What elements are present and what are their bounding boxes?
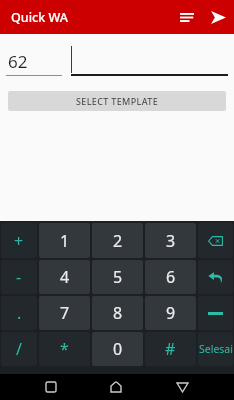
- staticText: 1: [60, 230, 70, 252]
- button[interactable]: .: [1, 296, 37, 330]
- staticText: 9: [166, 302, 176, 324]
- button[interactable]: 8: [92, 296, 143, 330]
- button[interactable]: Done: [198, 332, 233, 366]
- button[interactable]: 0: [92, 332, 143, 366]
- button[interactable]: 7: [39, 296, 90, 330]
- button[interactable]: 5: [92, 260, 143, 294]
- staticText: 7: [60, 302, 70, 324]
- staticText: #: [165, 338, 176, 360]
- staticText: Selesai: [199, 342, 233, 356]
- button[interactable]: 6: [145, 260, 196, 294]
- button[interactable]: /: [1, 332, 37, 366]
- button[interactable]: 9: [145, 296, 196, 330]
- staticText: *: [60, 338, 69, 360]
- staticText: 62: [8, 50, 28, 73]
- button[interactable]: 4: [39, 260, 90, 294]
- button[interactable]: -: [1, 260, 37, 294]
- staticText: -: [16, 266, 22, 288]
- staticText: 6: [166, 266, 176, 288]
- staticText: 0: [113, 338, 123, 360]
- staticText: 5: [113, 266, 123, 288]
- staticText: 3: [166, 230, 176, 252]
- staticText: /: [16, 338, 22, 360]
- staticText: 4: [60, 266, 70, 288]
- button[interactable]: Sort: [173, 3, 201, 31]
- button[interactable]: 3: [145, 223, 196, 258]
- button[interactable]: 1: [39, 223, 90, 258]
- button[interactable]: Send: [204, 3, 232, 31]
- staticText: +: [14, 230, 24, 252]
- staticText: 2: [113, 230, 123, 252]
- button[interactable]: Recents: [37, 374, 65, 400]
- button[interactable]: 2: [92, 223, 143, 258]
- button[interactable]: *: [39, 332, 90, 366]
- button[interactable]: Home: [102, 374, 130, 400]
- button[interactable]: Enter: [198, 260, 233, 294]
- button[interactable]: #: [145, 332, 196, 366]
- staticText: Quick WA: [11, 9, 68, 26]
- button[interactable]: +: [1, 223, 37, 258]
- button[interactable]: Backspace: [198, 223, 233, 258]
- button[interactable]: SELECT TEMPLATE: [8, 91, 226, 111]
- button[interactable]: Back: [168, 374, 196, 400]
- button[interactable]: Space: [198, 296, 233, 330]
- staticText: .: [17, 302, 22, 324]
- staticText: SELECT TEMPLATE: [76, 95, 159, 107]
- staticText: 8: [113, 302, 123, 324]
